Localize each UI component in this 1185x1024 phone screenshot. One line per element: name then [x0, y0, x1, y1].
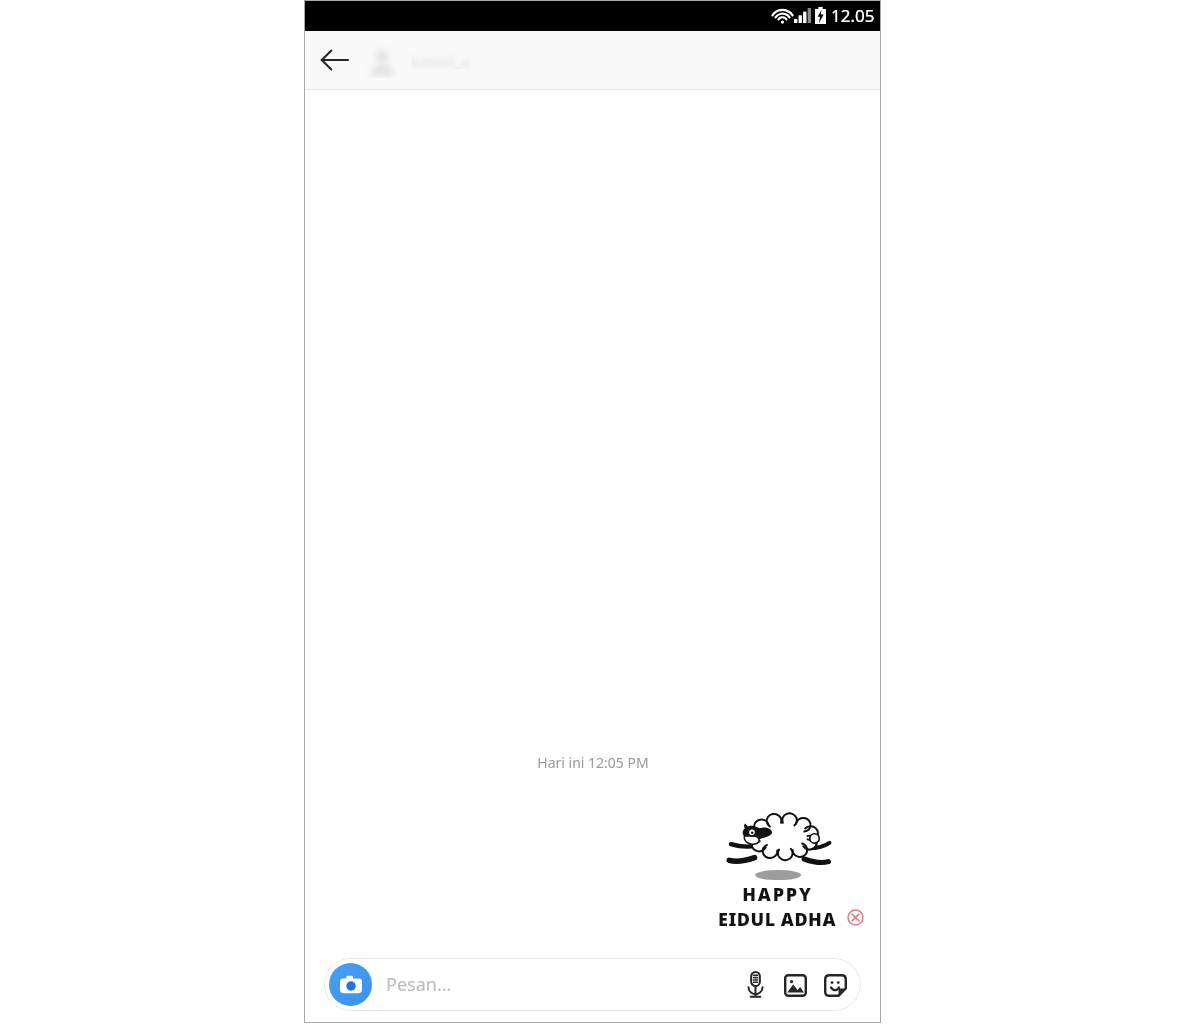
staticText: Pesan... — [386, 972, 735, 997]
staticText: Hari ini 12:05 PM — [537, 753, 649, 772]
button[interactable]: Stickers — [815, 965, 855, 1005]
button[interactable]: kawaii_u — [363, 37, 491, 84]
staticText: HAPPY — [742, 882, 813, 907]
staticText: EIDUL ADHA — [718, 907, 836, 932]
button[interactable]: Message not sent — [843, 905, 867, 929]
staticText: 12.05 — [831, 4, 875, 27]
button[interactable]: Happy Eidul Adha sheep sticker — [718, 802, 836, 936]
staticText: kawaii_u — [411, 52, 471, 69]
button[interactable]: Voice message — [735, 965, 775, 1005]
button[interactable]: Gallery — [775, 965, 815, 1005]
button[interactable]: Back — [312, 38, 356, 82]
button[interactable]: Camera — [329, 963, 372, 1006]
